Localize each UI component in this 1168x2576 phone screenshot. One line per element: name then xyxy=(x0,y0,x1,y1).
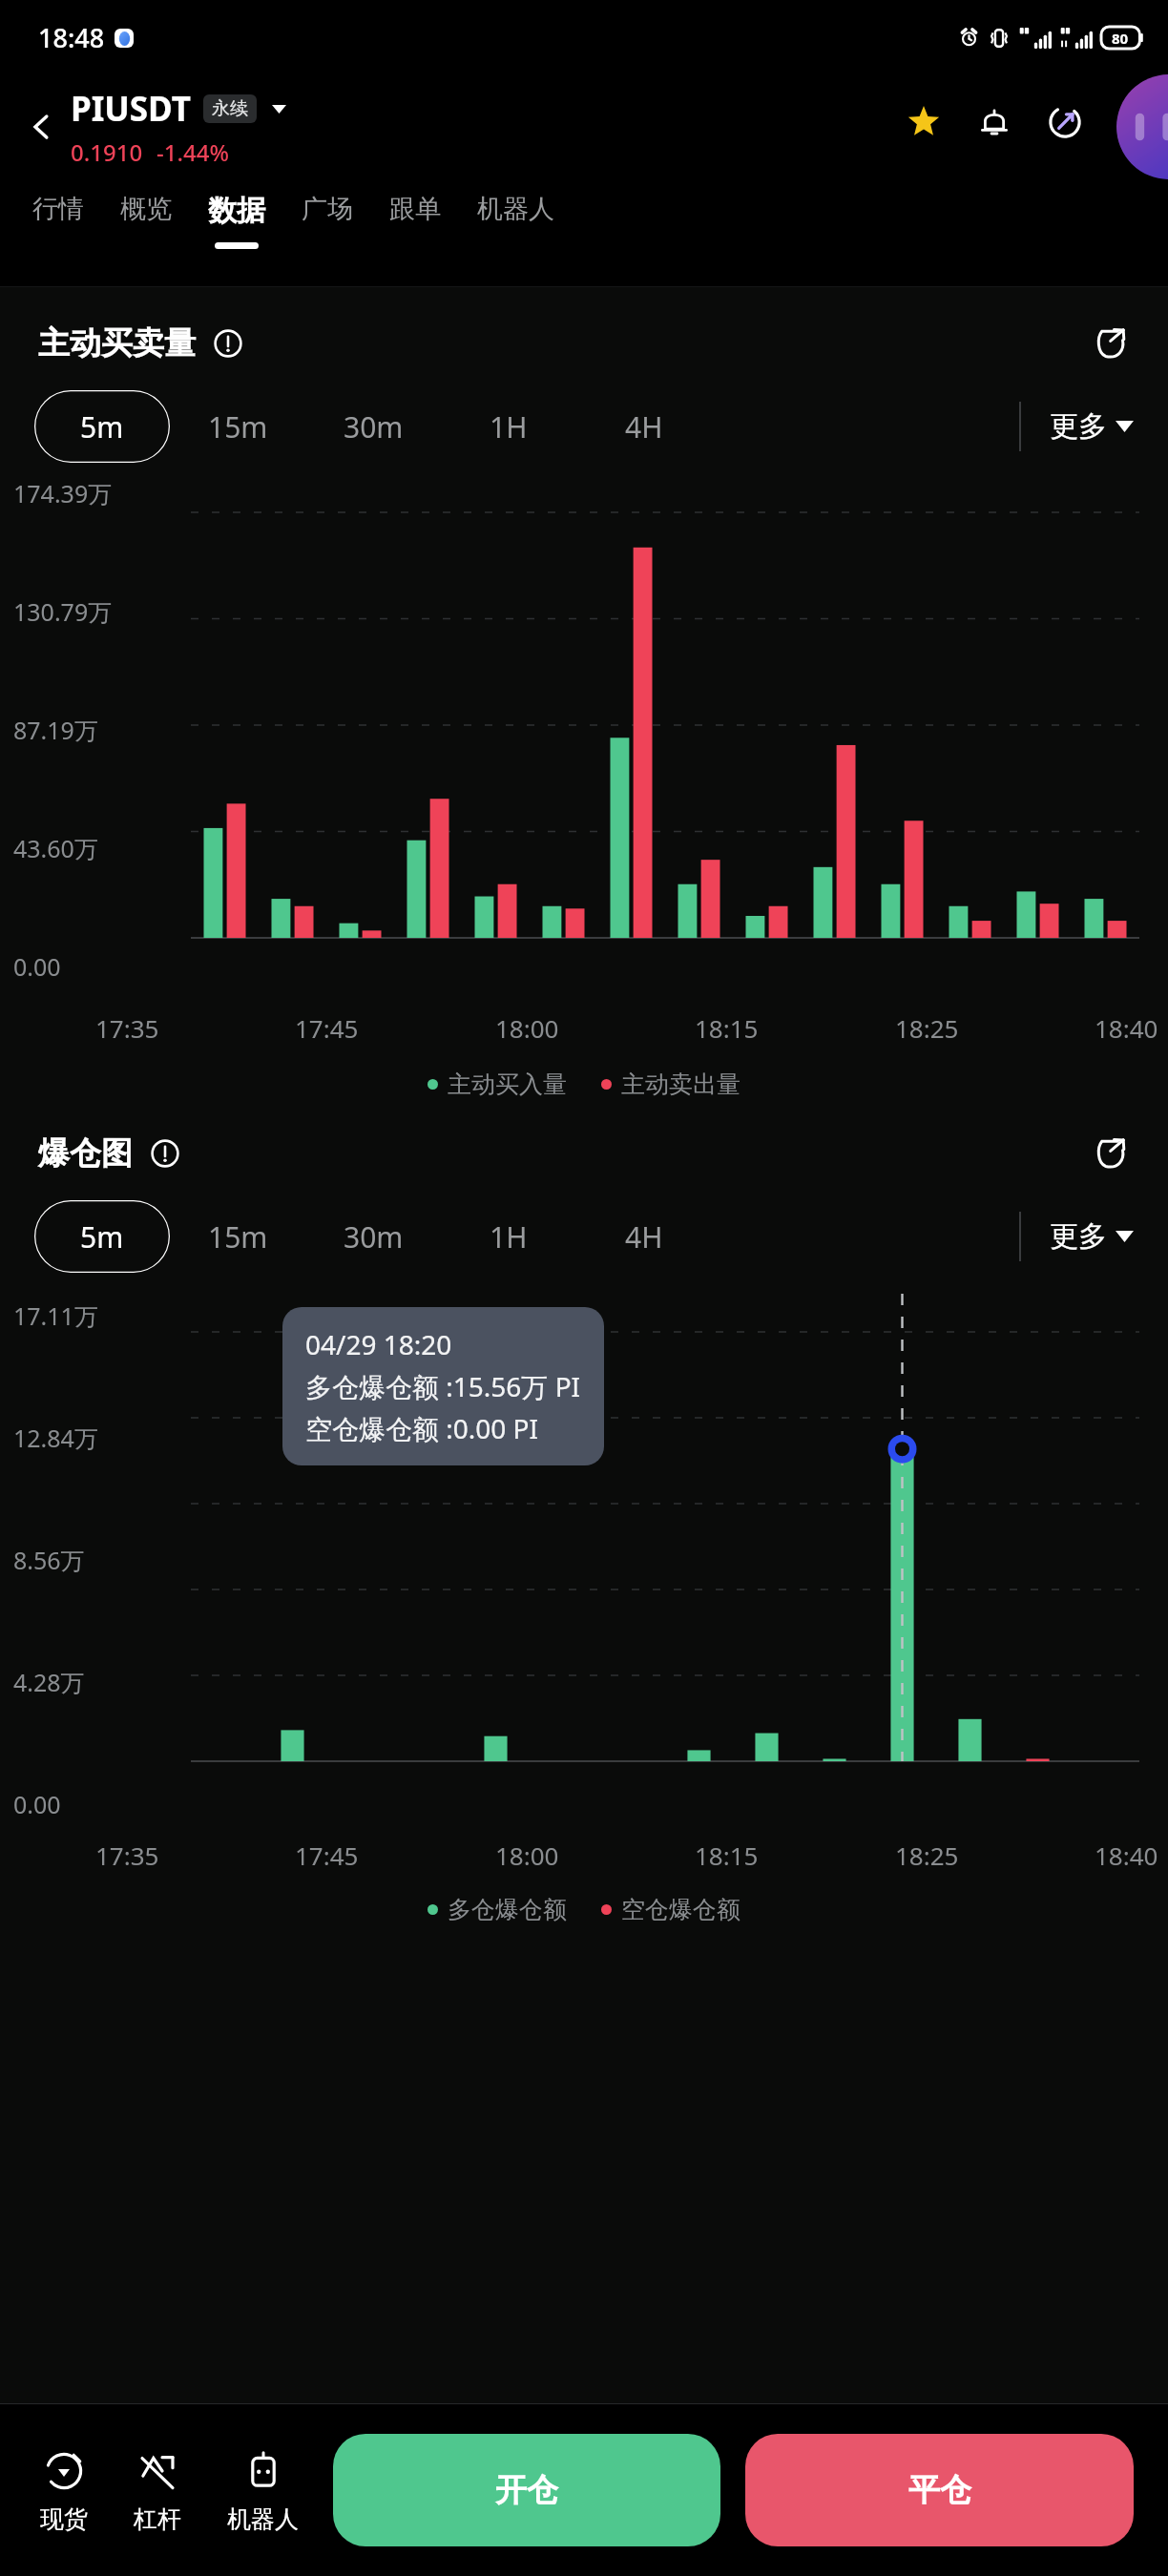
staticText: 18:48 xyxy=(38,20,105,55)
button[interactable]: Info xyxy=(146,1134,184,1173)
staticText: 杠杆 xyxy=(134,2504,181,2534)
staticText: 17:45 xyxy=(295,1839,359,1872)
staticText: 广场 xyxy=(302,193,353,225)
staticText: 开仓 xyxy=(495,2470,558,2510)
button[interactable]: Share xyxy=(1042,99,1088,145)
button[interactable]: 杠杆 xyxy=(132,2441,183,2540)
staticText: 17:35 xyxy=(95,1011,159,1045)
staticText: 1H xyxy=(490,1217,528,1257)
staticText: 18:15 xyxy=(695,1011,759,1045)
staticText: 18:40 xyxy=(1095,1839,1158,1872)
button[interactable]: 行情 xyxy=(29,191,88,244)
staticText: 多仓爆仓额 xyxy=(448,1895,567,1924)
staticText: 0.00 xyxy=(13,950,61,983)
button[interactable]: 1H xyxy=(441,1200,576,1273)
button[interactable]: 概览 xyxy=(116,191,176,244)
staticText: 30m xyxy=(344,407,404,447)
staticText: 机器人 xyxy=(227,2504,299,2534)
staticText: 80 xyxy=(1112,29,1129,48)
staticText: -1.44% xyxy=(156,136,229,168)
button[interactable]: 30m xyxy=(305,390,441,463)
staticText: 12.84万 xyxy=(13,1422,98,1454)
staticText: 1H xyxy=(490,407,528,447)
staticText: 8.56万 xyxy=(13,1544,85,1576)
button[interactable]: 跟单 xyxy=(386,191,445,244)
staticText: 0.1910 xyxy=(71,136,143,168)
staticText: 概览 xyxy=(120,193,172,225)
staticText: 18:40 xyxy=(1095,1011,1158,1045)
button[interactable]: 广场 xyxy=(298,191,357,244)
button[interactable]: Expand chart xyxy=(1090,322,1134,365)
button[interactable]: 4H xyxy=(576,390,712,463)
staticText: 更多 xyxy=(1050,408,1107,445)
staticText: 主动卖出量 xyxy=(621,1070,740,1099)
button[interactable]: 5m xyxy=(34,390,170,463)
button[interactable]: 平仓 xyxy=(745,2434,1134,2546)
button[interactable]: Alerts xyxy=(971,99,1017,145)
staticText: 174.39万 xyxy=(13,477,113,509)
staticText: 15m xyxy=(208,1217,268,1257)
staticText: 数据 xyxy=(208,193,265,229)
staticText: 多仓爆仓额 :15.56万 PI xyxy=(305,1368,581,1404)
staticText: PIUSDT xyxy=(71,86,191,132)
staticText: 43.60万 xyxy=(13,832,98,864)
staticText: 0.00 xyxy=(13,1788,61,1820)
staticText: 18:00 xyxy=(495,1011,559,1045)
staticText: 跟单 xyxy=(389,193,441,225)
staticText: 17:45 xyxy=(295,1011,359,1045)
button[interactable]: 永续 xyxy=(212,97,248,120)
button[interactable]: Select contract xyxy=(266,96,291,121)
staticText: 17.11万 xyxy=(13,1299,98,1332)
button[interactable]: 机器人 xyxy=(225,2441,301,2540)
staticText: 5m xyxy=(80,1217,124,1257)
staticText: 30m xyxy=(344,1217,404,1257)
button[interactable]: 15m xyxy=(170,390,305,463)
button[interactable]: 现货 xyxy=(38,2441,90,2540)
button[interactable]: Favorite xyxy=(901,99,947,145)
staticText: 空仓爆仓额 :0.00 PI xyxy=(305,1410,539,1446)
button[interactable]: Info xyxy=(209,324,247,363)
staticText: 永续 xyxy=(212,97,248,120)
staticText: 130.79万 xyxy=(13,595,113,628)
staticText: 18:25 xyxy=(895,1011,959,1045)
button[interactable]: 数据 xyxy=(204,191,269,251)
button[interactable]: 15m xyxy=(170,1200,305,1273)
staticText: 主动买入量 xyxy=(448,1070,567,1099)
staticText: 5m xyxy=(80,407,124,447)
button[interactable]: 4H xyxy=(576,1200,712,1273)
staticText: 空仓爆仓额 xyxy=(621,1895,740,1924)
button[interactable]: Back xyxy=(17,102,67,152)
button[interactable]: 5m xyxy=(34,1200,170,1273)
staticText: 4.28万 xyxy=(13,1666,85,1698)
button[interactable]: 1H xyxy=(441,390,576,463)
staticText: 主动买卖量 xyxy=(38,323,196,364)
staticText: 18:15 xyxy=(695,1839,759,1872)
button[interactable]: Expand chart xyxy=(1090,1132,1134,1175)
button[interactable]: 更多 xyxy=(1044,399,1139,454)
staticText: 87.19万 xyxy=(13,714,98,746)
button[interactable]: 机器人 xyxy=(473,191,558,244)
staticText: 更多 xyxy=(1050,1218,1107,1255)
staticText: 15m xyxy=(208,407,268,447)
button[interactable]: 更多 xyxy=(1044,1209,1139,1264)
staticText: 爆仓图 xyxy=(38,1133,133,1174)
staticText: 4H xyxy=(625,1217,663,1257)
staticText: 机器人 xyxy=(477,193,554,225)
staticText: 17:35 xyxy=(95,1839,159,1872)
button[interactable]: 30m xyxy=(305,1200,441,1273)
staticText: 现货 xyxy=(40,2504,88,2534)
staticText: 18:00 xyxy=(495,1839,559,1872)
staticText: 4H xyxy=(625,407,663,447)
button[interactable]: 开仓 xyxy=(333,2434,720,2546)
staticText: 行情 xyxy=(32,193,84,225)
staticText: 04/29 18:20 xyxy=(305,1326,452,1362)
staticText: 平仓 xyxy=(908,2470,971,2510)
staticText: 18:25 xyxy=(895,1839,959,1872)
